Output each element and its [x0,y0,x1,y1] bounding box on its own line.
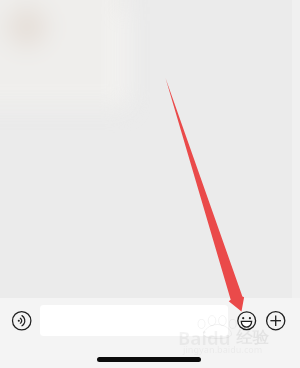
staticText: 经验 [236,327,269,348]
button[interactable]: Voice message [12,311,32,331]
button[interactable]: Emoji [237,311,257,331]
staticText: Baidu [178,325,231,350]
button[interactable]: Add [266,311,286,331]
staticText: jingyan.baidu.com [183,343,263,355]
